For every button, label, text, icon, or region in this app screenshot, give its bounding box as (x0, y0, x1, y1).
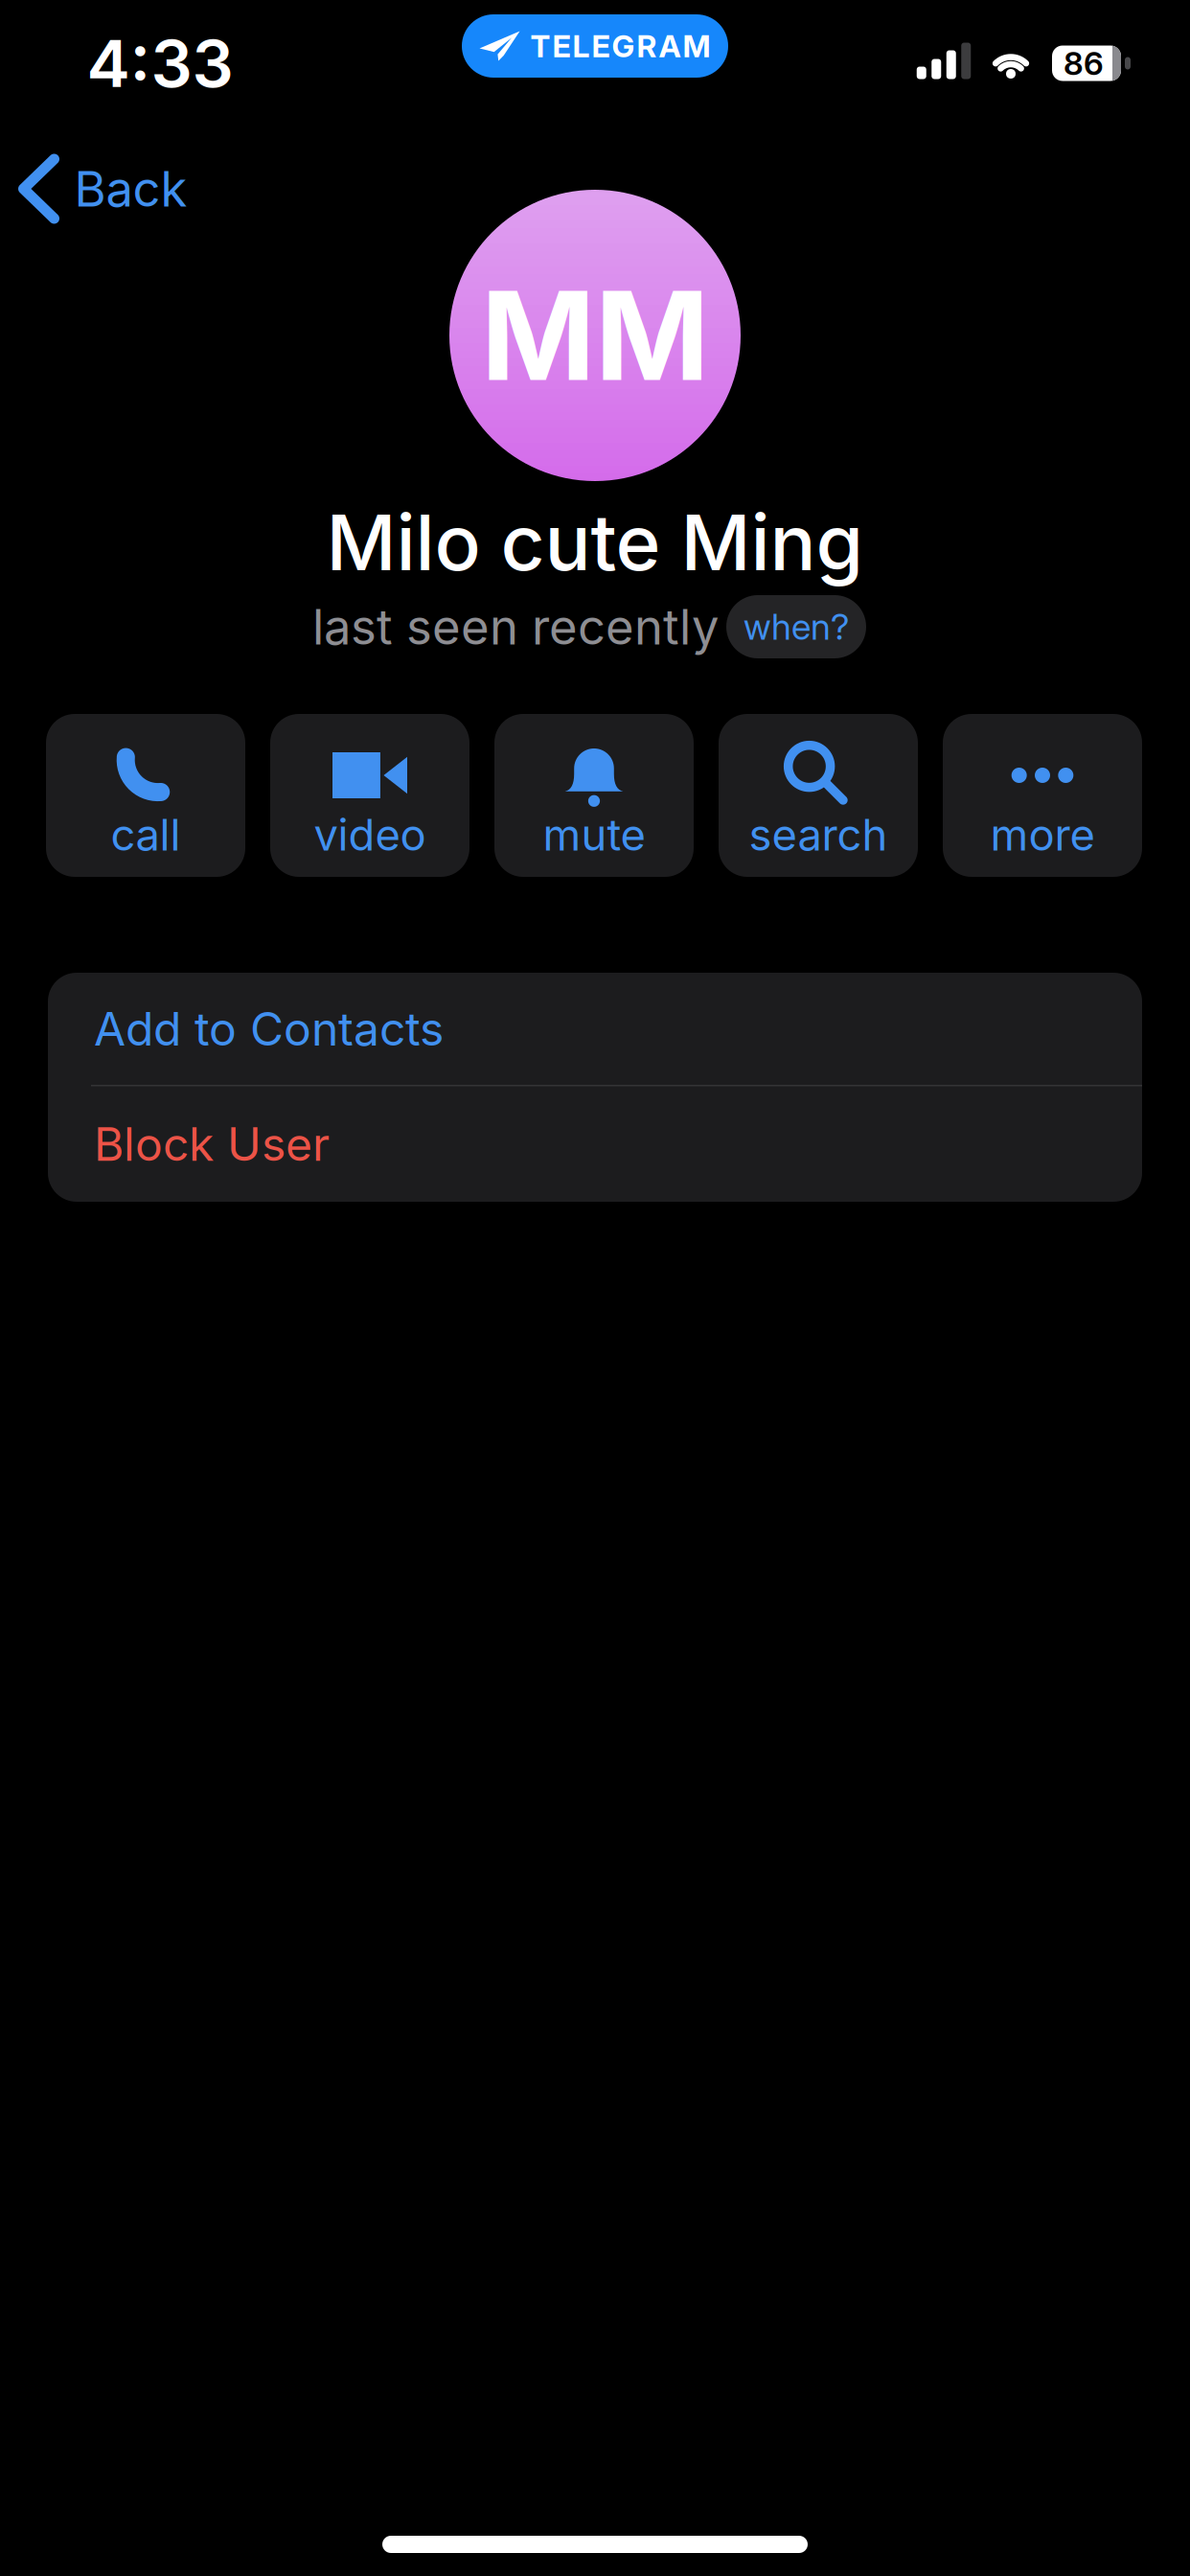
staticText: when? (744, 606, 849, 648)
staticText: search (749, 809, 888, 860)
staticText: MM (481, 263, 709, 408)
staticText: video (314, 809, 426, 860)
staticText: Add to Contacts (94, 1002, 444, 1056)
staticText: TELEGRAM (530, 28, 710, 64)
staticText: 4:33 (87, 25, 233, 102)
button[interactable]: call (46, 714, 245, 877)
button[interactable]: search (719, 714, 918, 877)
staticText: mute (543, 809, 645, 860)
button[interactable]: Add to Contacts (48, 973, 1142, 1085)
staticText: call (111, 809, 181, 860)
button[interactable]: video (270, 714, 469, 877)
button[interactable]: Telegram call status (462, 14, 728, 78)
staticText: Block User (94, 1117, 330, 1171)
button[interactable]: more (943, 714, 1142, 877)
button[interactable]: Back (23, 159, 187, 218)
staticText: Milo cute Ming (326, 497, 864, 588)
button[interactable]: Block User (48, 1086, 1142, 1202)
staticText: Back (74, 160, 187, 217)
button[interactable]: when? (726, 595, 866, 658)
staticText: 86 (1064, 44, 1104, 82)
staticText: last seen recently (312, 598, 719, 655)
staticText: more (990, 809, 1095, 860)
button[interactable]: mute (494, 714, 694, 877)
